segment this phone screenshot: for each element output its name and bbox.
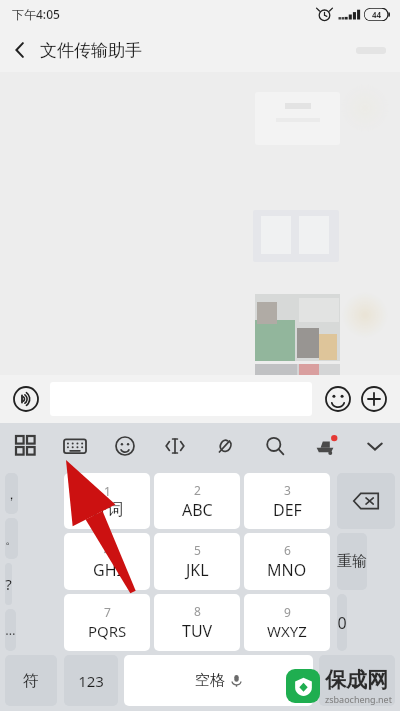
staticText: 6 bbox=[284, 542, 291, 558]
button[interactable]: 。 bbox=[5, 518, 18, 559]
button[interactable]: More bbox=[356, 381, 392, 417]
button[interactable]: Enter bbox=[319, 655, 395, 706]
button[interactable]: 5 bbox=[154, 533, 240, 590]
staticText: 2 bbox=[194, 482, 201, 498]
button[interactable]: 123 bbox=[64, 655, 118, 706]
button[interactable]: Keyboard bbox=[50, 423, 100, 468]
button[interactable]: 空格 bbox=[124, 655, 313, 706]
button[interactable]: 符 bbox=[5, 655, 57, 706]
button[interactable]: 8 bbox=[154, 594, 240, 651]
button[interactable]: 1 bbox=[64, 473, 150, 529]
staticText: 9 bbox=[284, 604, 291, 620]
staticText: GHI bbox=[93, 559, 122, 581]
button[interactable]: Emoji bbox=[320, 381, 356, 417]
button[interactable]: 6 bbox=[244, 533, 330, 590]
button[interactable]: Apps bbox=[0, 423, 50, 468]
staticText: JKL bbox=[186, 559, 209, 581]
staticText: … bbox=[5, 621, 16, 639]
button[interactable]: … bbox=[5, 609, 16, 651]
button[interactable]: Search bbox=[250, 423, 300, 468]
staticText: 分词 bbox=[91, 500, 123, 520]
button[interactable]: Theme bbox=[300, 423, 350, 468]
staticText: ? bbox=[5, 574, 12, 594]
button[interactable]: ? bbox=[5, 563, 12, 605]
staticText: 7 bbox=[104, 604, 111, 620]
staticText: ABC bbox=[182, 499, 213, 521]
button[interactable]: Back bbox=[0, 30, 40, 70]
button[interactable]: Edit cursor bbox=[150, 423, 200, 468]
button[interactable]: Hide keyboard bbox=[350, 423, 400, 468]
button[interactable]: 3 bbox=[244, 473, 330, 529]
button[interactable]: 7 bbox=[64, 594, 150, 651]
staticText: TUV bbox=[182, 620, 213, 642]
button[interactable]: 0 bbox=[337, 594, 347, 651]
staticText: WXYZ bbox=[267, 621, 307, 641]
staticText: 123 bbox=[78, 671, 104, 691]
staticText: 1 bbox=[104, 483, 111, 499]
staticText: 5 bbox=[194, 542, 201, 558]
staticText: PQRS bbox=[88, 621, 127, 641]
button[interactable]: 9 bbox=[244, 594, 330, 651]
button[interactable]: Backspace bbox=[337, 473, 395, 529]
button[interactable]: Voice input bbox=[8, 381, 44, 417]
staticText: ， bbox=[5, 486, 18, 502]
staticText: MNO bbox=[267, 559, 307, 581]
staticText: 符 bbox=[23, 671, 39, 691]
staticText: 44 bbox=[372, 9, 382, 20]
button[interactable]: Emoticon bbox=[100, 423, 150, 468]
staticText: zsbaocheng.net bbox=[325, 693, 392, 705]
button[interactable]: Attachment bbox=[200, 423, 250, 468]
button[interactable]: 2 bbox=[154, 473, 240, 529]
staticText: DEF bbox=[273, 499, 302, 521]
staticText: 3 bbox=[284, 482, 291, 498]
staticText: 0 bbox=[337, 612, 347, 634]
staticText: 。 bbox=[5, 531, 18, 547]
staticText: 4 bbox=[104, 542, 111, 558]
button[interactable]: 4 bbox=[64, 533, 150, 590]
staticText: 8 bbox=[194, 603, 201, 619]
button[interactable]: ， bbox=[5, 473, 18, 514]
staticText: 下午4:05 bbox=[12, 6, 60, 22]
button[interactable]: 重输 bbox=[337, 533, 367, 590]
staticText: 重输 bbox=[337, 552, 367, 571]
staticText: 保成网 bbox=[325, 667, 388, 693]
staticText: 文件传输助手 bbox=[40, 40, 142, 61]
staticText: 空格 bbox=[195, 671, 225, 690]
